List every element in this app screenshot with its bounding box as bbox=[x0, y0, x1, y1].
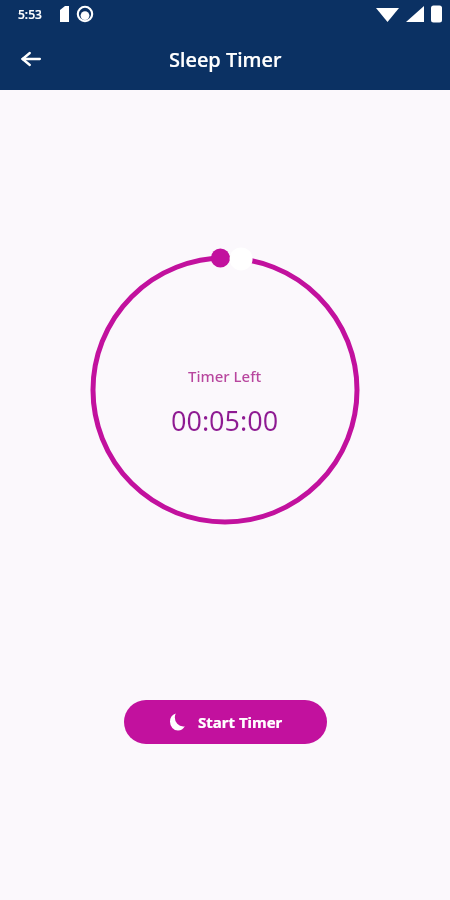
button[interactable]: Start Timer bbox=[124, 700, 327, 744]
button[interactable]: Back bbox=[8, 36, 54, 82]
staticText: 00:05:00 bbox=[171, 402, 279, 439]
staticText: Sleep Timer bbox=[169, 46, 282, 73]
staticText: Start Timer bbox=[198, 712, 283, 732]
staticText: Timer Left bbox=[188, 366, 262, 386]
staticText: 5:53 bbox=[18, 6, 42, 22]
